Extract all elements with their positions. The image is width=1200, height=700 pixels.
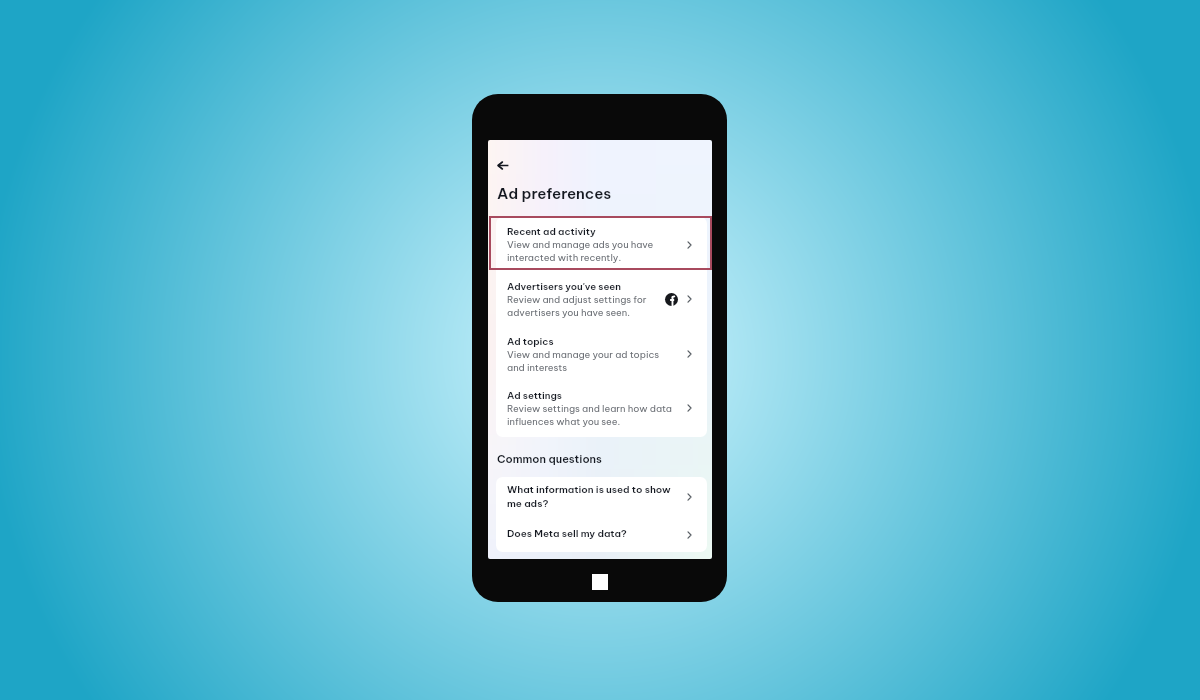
staticText: Does Meta sell my data? <box>507 527 627 540</box>
staticText: Ad settings <box>507 389 562 401</box>
button[interactable]: Back <box>490 153 515 178</box>
staticText: View and manage your ad topics and inter… <box>507 348 660 373</box>
staticText: Common questions <box>497 452 602 466</box>
staticText: Ad topics <box>507 335 554 347</box>
staticText: What information is used to show me ads? <box>507 483 671 509</box>
staticText: Review and adjust settings for advertise… <box>507 293 647 318</box>
button[interactable] <box>496 271 707 326</box>
button[interactable] <box>496 326 707 381</box>
staticText: Recent ad activity <box>507 225 596 237</box>
staticText: Advertisers you've seen <box>507 280 621 292</box>
staticText: View and manage ads you have interacted … <box>507 238 654 263</box>
button[interactable] <box>496 217 707 271</box>
staticText: Ad preferences <box>497 184 612 203</box>
staticText: Review settings and learn how data influ… <box>507 402 672 427</box>
button[interactable] <box>496 521 707 552</box>
button[interactable] <box>496 381 707 435</box>
button[interactable] <box>496 477 707 521</box>
